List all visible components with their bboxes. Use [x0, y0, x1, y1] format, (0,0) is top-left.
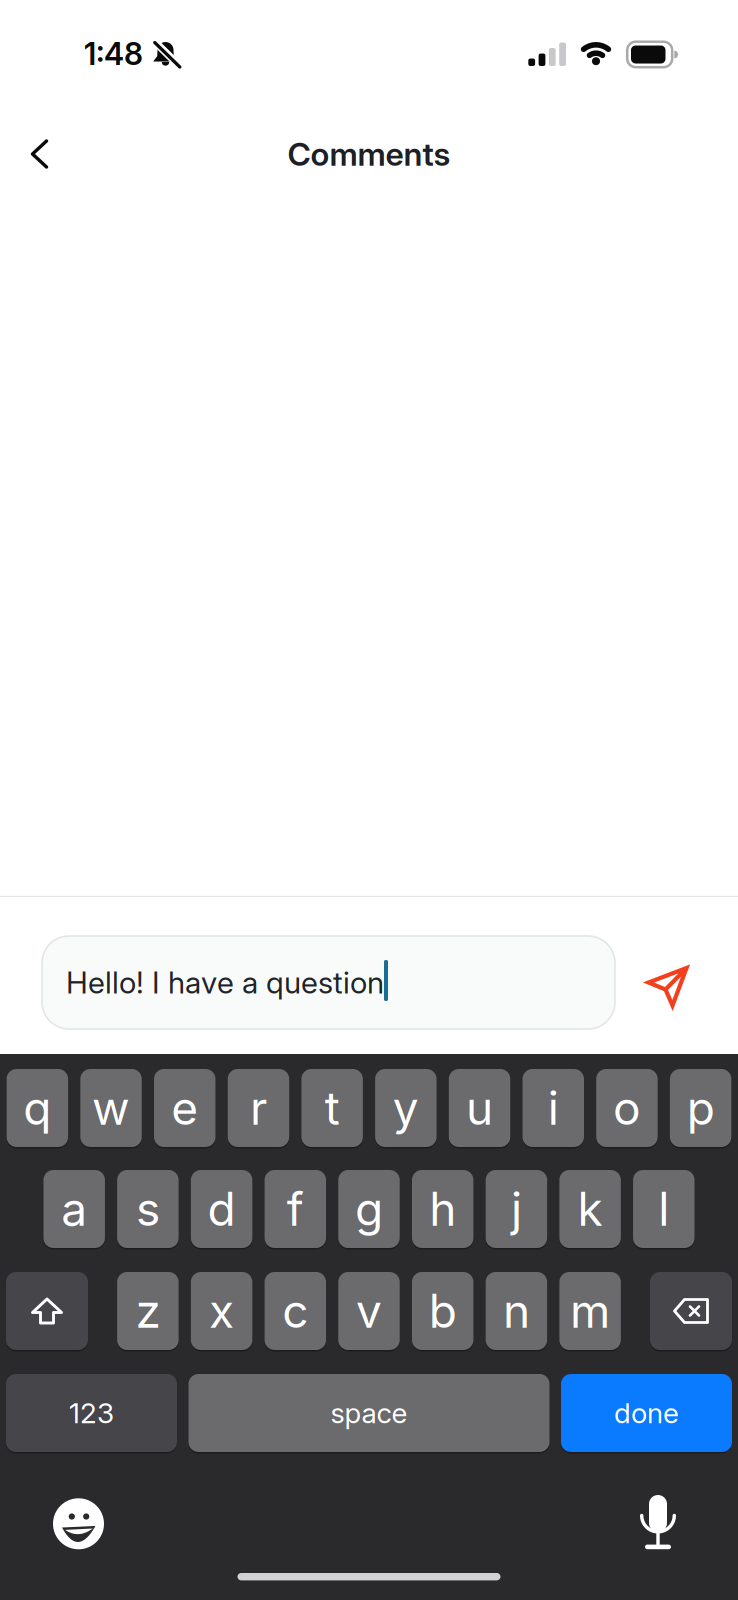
- button[interactable]: Shift: [6, 1272, 88, 1350]
- staticText: done: [614, 1396, 679, 1429]
- staticText: 1:48: [84, 36, 143, 72]
- staticText: p: [687, 1081, 715, 1135]
- button[interactable]: v: [338, 1272, 400, 1350]
- button[interactable]: space: [188, 1374, 549, 1452]
- button[interactable]: m: [559, 1272, 621, 1350]
- button[interactable]: Send: [646, 958, 692, 1006]
- button[interactable]: z: [117, 1272, 179, 1350]
- staticText: y: [393, 1081, 419, 1135]
- button[interactable]: x: [191, 1272, 252, 1350]
- button[interactable]: u: [449, 1069, 510, 1147]
- staticText: Comments: [287, 135, 450, 173]
- staticText: d: [208, 1182, 236, 1236]
- staticText: m: [570, 1284, 610, 1338]
- button[interactable]: h: [412, 1170, 473, 1248]
- button[interactable]: r: [228, 1069, 289, 1147]
- staticText: b: [429, 1284, 457, 1338]
- button[interactable]: Dictate: [641, 1495, 675, 1549]
- staticText: r: [250, 1081, 267, 1135]
- staticText: c: [282, 1284, 308, 1338]
- button[interactable]: j: [486, 1170, 547, 1248]
- staticText: a: [61, 1182, 87, 1236]
- button[interactable]: f: [265, 1170, 326, 1248]
- staticText: z: [135, 1284, 160, 1338]
- button[interactable]: q: [7, 1069, 68, 1147]
- staticText: space: [330, 1396, 407, 1429]
- button[interactable]: Comment text field: [42, 936, 615, 1029]
- staticText: g: [355, 1182, 383, 1236]
- button[interactable]: Delete: [650, 1272, 732, 1350]
- button[interactable]: o: [596, 1069, 658, 1147]
- button[interactable]: i: [522, 1069, 584, 1147]
- button[interactable]: p: [670, 1069, 731, 1147]
- staticText: j: [511, 1182, 522, 1236]
- button[interactable]: 123: [6, 1374, 177, 1452]
- button[interactable]: w: [80, 1069, 142, 1147]
- button[interactable]: d: [191, 1170, 252, 1248]
- button[interactable]: g: [338, 1170, 400, 1248]
- staticText: h: [429, 1182, 456, 1236]
- staticText: k: [578, 1182, 603, 1236]
- button[interactable]: a: [43, 1170, 105, 1248]
- button[interactable]: Emoji: [53, 1495, 104, 1546]
- button[interactable]: done: [561, 1374, 732, 1452]
- button[interactable]: c: [264, 1272, 326, 1350]
- staticText: w: [92, 1081, 130, 1135]
- button[interactable]: t: [301, 1069, 363, 1147]
- button[interactable]: s: [117, 1170, 179, 1248]
- staticText: i: [548, 1081, 559, 1135]
- staticText: e: [171, 1081, 198, 1135]
- button[interactable]: e: [154, 1069, 215, 1147]
- staticText: Hello! I have a question: [66, 965, 384, 1000]
- staticText: q: [23, 1081, 51, 1135]
- staticText: o: [613, 1081, 641, 1135]
- staticText: l: [658, 1182, 669, 1236]
- staticText: u: [466, 1081, 493, 1135]
- staticText: t: [325, 1081, 340, 1135]
- staticText: 123: [69, 1396, 114, 1429]
- button[interactable]: l: [633, 1170, 694, 1248]
- button[interactable]: n: [486, 1272, 547, 1350]
- staticText: s: [136, 1182, 160, 1236]
- staticText: v: [356, 1284, 382, 1338]
- button[interactable]: b: [412, 1272, 473, 1350]
- staticText: f: [287, 1182, 304, 1236]
- staticText: n: [503, 1284, 530, 1338]
- button[interactable]: Back: [0, 139, 49, 168]
- button[interactable]: y: [375, 1069, 437, 1147]
- staticText: x: [209, 1284, 234, 1338]
- button[interactable]: k: [559, 1170, 621, 1248]
